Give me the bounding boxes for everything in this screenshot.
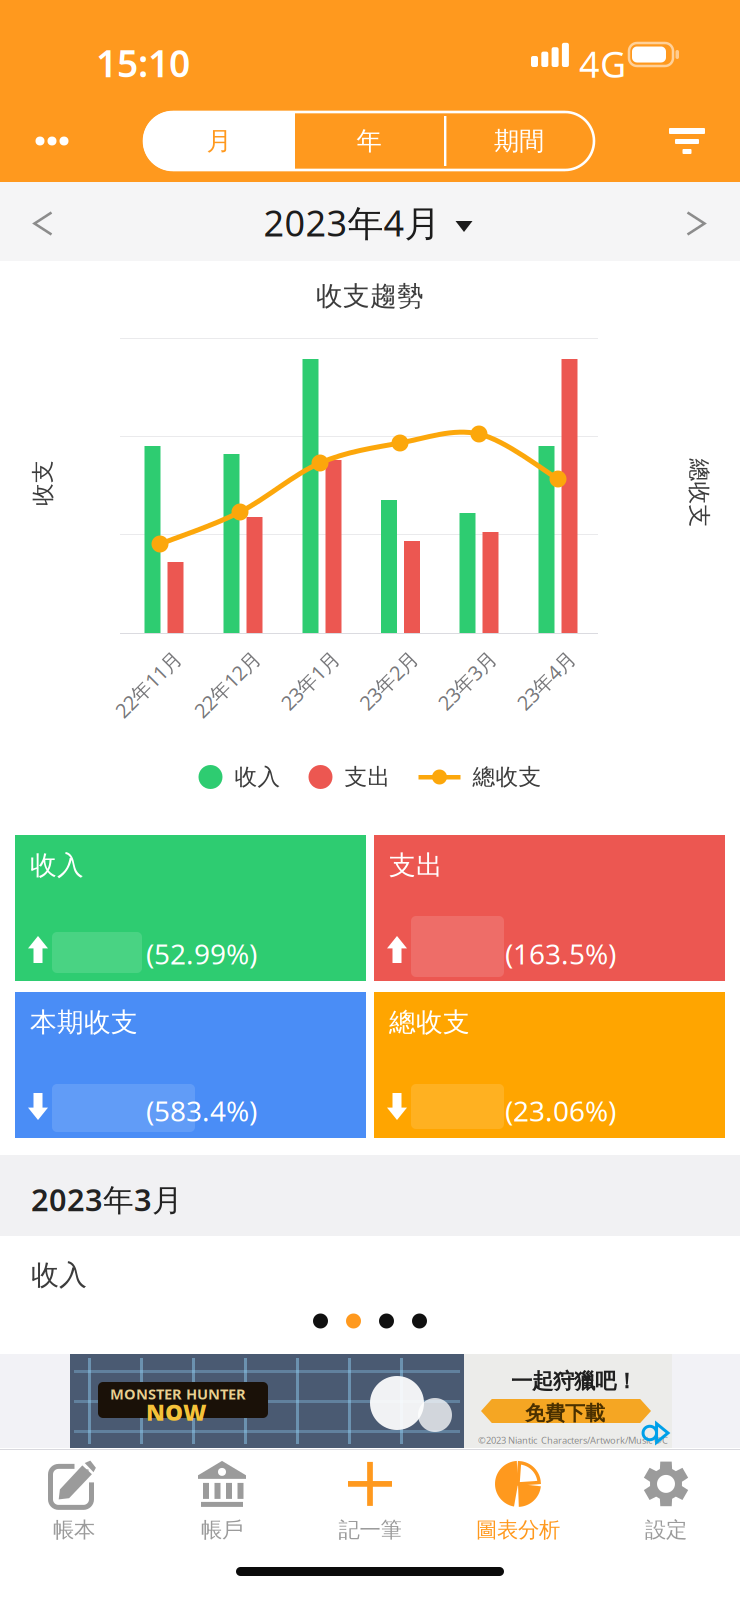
staticText: 免費下載 <box>525 1401 605 1426</box>
staticText: 本期收支 <box>30 1006 138 1039</box>
button[interactable]: 帳戶 <box>148 1451 296 1551</box>
button[interactable]: Next month <box>653 184 739 263</box>
button[interactable]: 2023年4月 <box>218 183 518 262</box>
button[interactable]: 帳本 <box>0 1451 148 1551</box>
staticText: 23年3月 <box>434 677 507 703</box>
staticText: 支出 <box>389 849 443 882</box>
staticText: (23.06%) <box>505 1092 616 1129</box>
staticText: 2023年4月 <box>263 199 440 246</box>
button[interactable]: 月 <box>144 112 294 170</box>
button[interactable]: 年 <box>294 112 444 170</box>
staticText: (52.99%) <box>146 935 257 972</box>
button[interactable]: Previous month <box>0 184 86 263</box>
staticText: 收入 <box>31 1258 87 1292</box>
button[interactable]: 總收支 <box>374 992 725 1138</box>
staticText: 2023年3月 <box>31 1179 183 1220</box>
button[interactable]: 收入 <box>15 835 366 981</box>
staticText: 總收支 <box>472 763 541 791</box>
staticText: 23年4月 <box>513 677 586 703</box>
staticText: (163.5%) <box>505 935 616 972</box>
staticText: 23年2月 <box>356 677 429 703</box>
staticText: 記一筆 <box>338 1517 401 1543</box>
staticText: 收支趨勢 <box>316 280 424 312</box>
staticText: NOW <box>146 1397 207 1427</box>
button[interactable]: 設定 <box>592 1451 740 1551</box>
staticText: MONSTER HUNTER <box>110 1384 246 1403</box>
staticText: 支出 <box>344 763 390 791</box>
staticText: 年 <box>356 125 381 156</box>
staticText: 圖表分析 <box>476 1517 560 1543</box>
staticText: (583.4%) <box>146 1092 257 1129</box>
staticText: 15:10 <box>96 38 190 88</box>
staticText: 23年1月 <box>277 677 350 703</box>
staticText: 收入 <box>234 763 280 791</box>
button[interactable]: 本期收支 <box>15 992 366 1138</box>
button[interactable]: More <box>15 110 89 172</box>
button[interactable]: Filter <box>650 110 724 172</box>
button[interactable]: 記一筆 <box>296 1451 444 1551</box>
staticText: 22年11月 <box>108 677 192 703</box>
staticText: 月 <box>206 125 231 156</box>
staticText: 收支 <box>20 469 66 497</box>
staticText: 總收支 <box>664 479 733 507</box>
staticText: 4G <box>579 40 626 88</box>
staticText: ©2023 Niantic Characters/Artwork/Music ©… <box>478 1434 668 1446</box>
button[interactable]: 期間 <box>444 112 594 170</box>
staticText: 帳本 <box>53 1517 95 1543</box>
button[interactable]: Advertisement <box>70 1354 672 1448</box>
staticText: 22年12月 <box>187 677 271 703</box>
staticText: 總收支 <box>389 1006 470 1039</box>
staticText: 收入 <box>30 849 84 882</box>
staticText: 一起狩獵吧！ <box>511 1368 637 1394</box>
staticText: 期間 <box>494 125 544 156</box>
button[interactable]: 圖表分析 <box>444 1451 592 1551</box>
staticText: 帳戶 <box>201 1517 243 1543</box>
staticText: 設定 <box>645 1517 687 1543</box>
button[interactable]: 支出 <box>374 835 725 981</box>
